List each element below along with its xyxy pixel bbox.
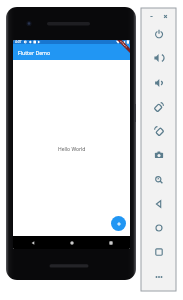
button[interactable]: More bbox=[150, 268, 168, 286]
staticText: Flutter Demo bbox=[18, 49, 51, 56]
button[interactable]: Power bbox=[150, 25, 168, 43]
button[interactable]: Back bbox=[13, 236, 52, 249]
button[interactable]: Take screenshot bbox=[150, 146, 168, 164]
button[interactable]: Volume down bbox=[150, 74, 168, 92]
button[interactable]: Overview bbox=[150, 243, 168, 261]
button[interactable]: Volume up bbox=[150, 49, 168, 67]
staticText: Hello World bbox=[58, 146, 86, 153]
staticText: 4:07 bbox=[15, 40, 22, 44]
button[interactable]: Back bbox=[150, 195, 168, 213]
button[interactable]: Add bbox=[111, 216, 126, 231]
button[interactable]: Rotate left bbox=[150, 98, 168, 116]
button[interactable]: Recents bbox=[91, 236, 130, 249]
button[interactable]: Rotate right bbox=[150, 122, 168, 140]
button[interactable]: Home bbox=[52, 236, 91, 249]
button[interactable]: Minimize bbox=[147, 12, 156, 21]
button[interactable]: Zoom bbox=[150, 171, 168, 189]
button[interactable]: Home bbox=[150, 219, 168, 237]
button[interactable]: Close bbox=[161, 12, 170, 21]
